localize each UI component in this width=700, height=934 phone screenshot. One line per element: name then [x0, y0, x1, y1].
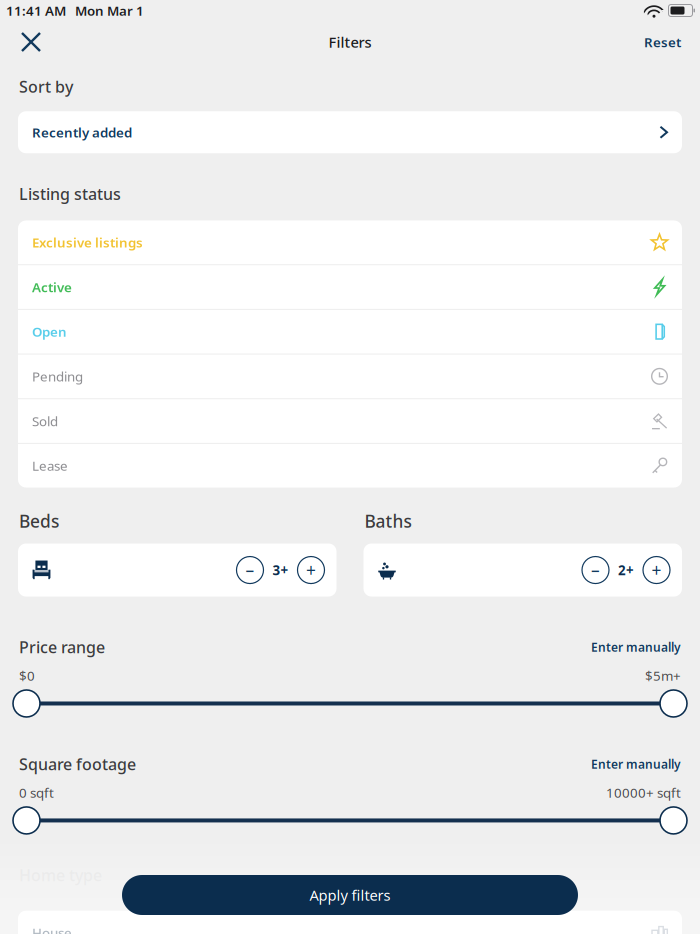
staticText: Mon Mar 1 — [66, 2, 144, 19]
staticText: Open — [32, 323, 67, 340]
staticText: Square footage — [19, 753, 136, 775]
staticText: – — [591, 558, 600, 581]
staticText: Pending — [32, 367, 83, 385]
staticText: Enter manually — [591, 756, 681, 772]
staticText: Beds — [19, 509, 59, 532]
button[interactable]: Reset — [634, 21, 691, 63]
staticText: + — [651, 558, 661, 581]
staticText: 11:41 AM — [6, 2, 66, 19]
staticText: Filters — [328, 32, 371, 52]
staticText: 3+ — [272, 561, 288, 579]
button[interactable]: Enter manually — [591, 756, 681, 772]
button[interactable]: Increase 2+ — [643, 556, 670, 583]
button[interactable]: Apply filters — [122, 875, 578, 915]
button[interactable]: Enter manually — [591, 639, 681, 655]
staticText: Active — [32, 278, 72, 296]
staticText: Apply filters — [309, 885, 390, 905]
staticText: Exclusive listings — [32, 233, 143, 251]
staticText: – — [245, 558, 254, 581]
staticText: Baths — [364, 509, 411, 532]
staticText: Listing status — [19, 183, 121, 204]
button[interactable]: Recently added — [18, 111, 682, 153]
staticText: Price range — [19, 636, 105, 658]
button[interactable]: Decrease 3+ — [236, 556, 263, 583]
button[interactable]: Close — [9, 21, 53, 63]
button[interactable]: Lease — [18, 444, 682, 487]
button[interactable]: Pending — [18, 354, 682, 398]
staticText: Sold — [32, 412, 58, 430]
staticText: 2+ — [618, 561, 634, 579]
staticText: + — [306, 558, 316, 581]
staticText: $5m+ — [645, 667, 681, 684]
staticText: Enter manually — [591, 639, 681, 655]
button[interactable]: Sold — [18, 399, 682, 443]
staticText: $0 — [19, 667, 35, 684]
staticText: 10000+ sqft — [606, 784, 681, 801]
staticText: Lease — [32, 457, 68, 474]
staticText: 0 sqft — [19, 784, 54, 801]
button[interactable]: Active — [18, 265, 682, 309]
button[interactable]: Open — [18, 310, 682, 353]
staticText: Sort by — [19, 76, 73, 97]
staticText: House — [32, 924, 72, 934]
button[interactable]: Decrease 2+ — [582, 556, 609, 583]
staticText: Reset — [644, 33, 681, 51]
staticText: Recently added — [32, 123, 132, 141]
button[interactable]: Increase 3+ — [297, 556, 324, 583]
button[interactable]: Exclusive listings — [18, 220, 682, 264]
